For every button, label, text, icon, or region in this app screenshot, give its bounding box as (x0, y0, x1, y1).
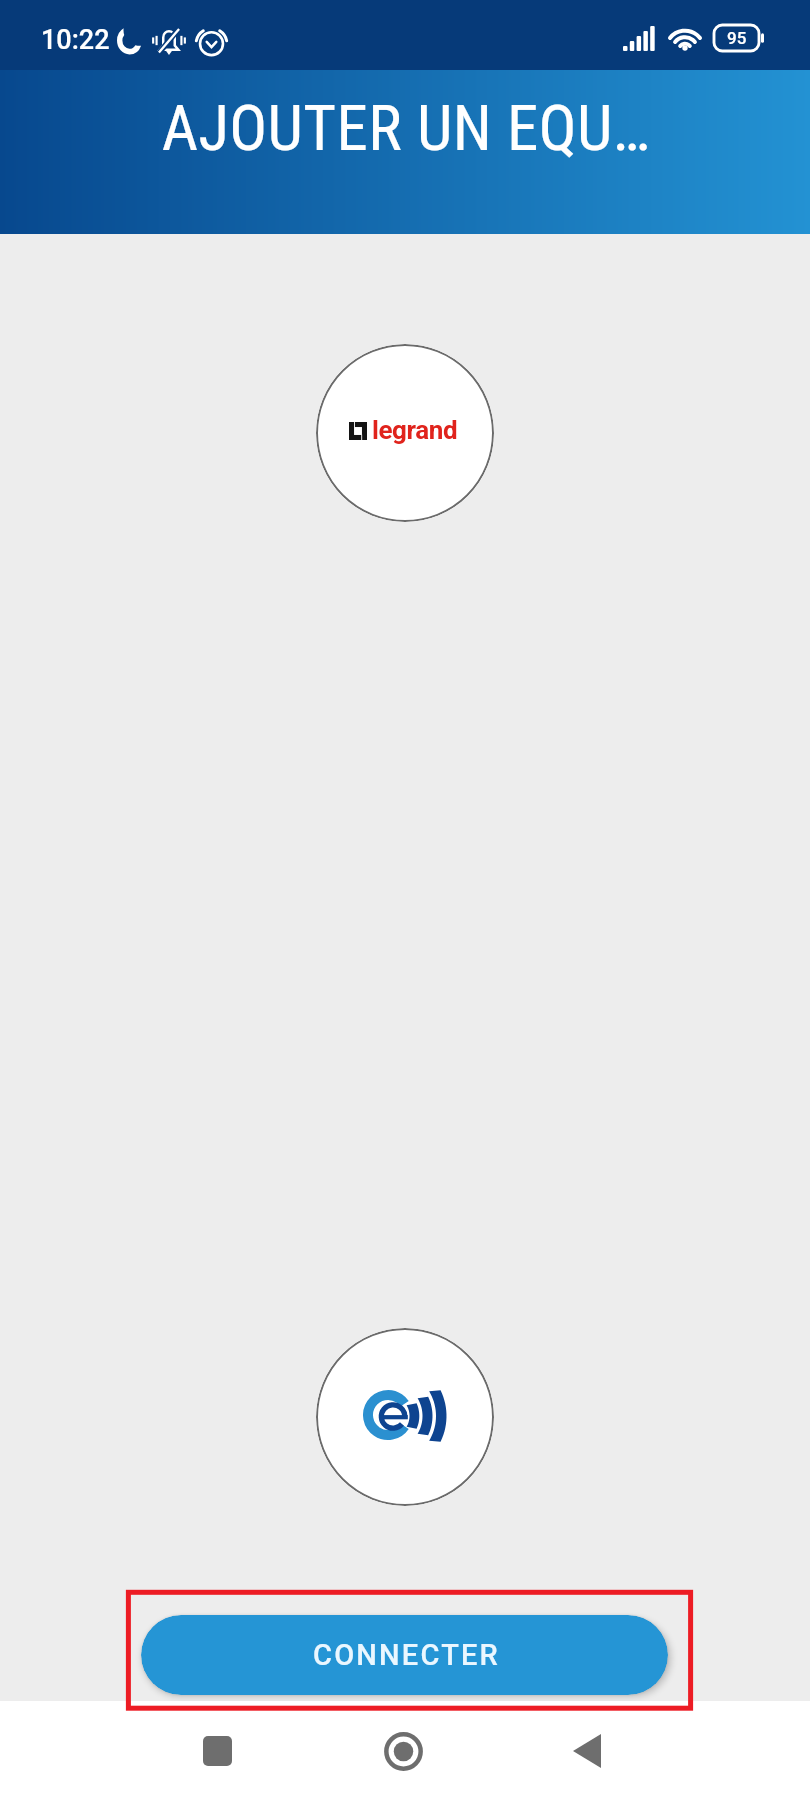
staticText: legrand (372, 415, 458, 445)
button[interactable]: Back (542, 1706, 632, 1796)
staticText: CONNECTER (313, 1638, 501, 1672)
staticText: 10:22 (41, 24, 110, 56)
button[interactable]: Home (358, 1706, 448, 1796)
button[interactable]: CONNECTER (141, 1615, 668, 1695)
staticText: 95 (727, 28, 747, 48)
staticText: AJOUTER UN EQU… (1, 92, 810, 166)
button[interactable]: Recents (172, 1706, 262, 1796)
